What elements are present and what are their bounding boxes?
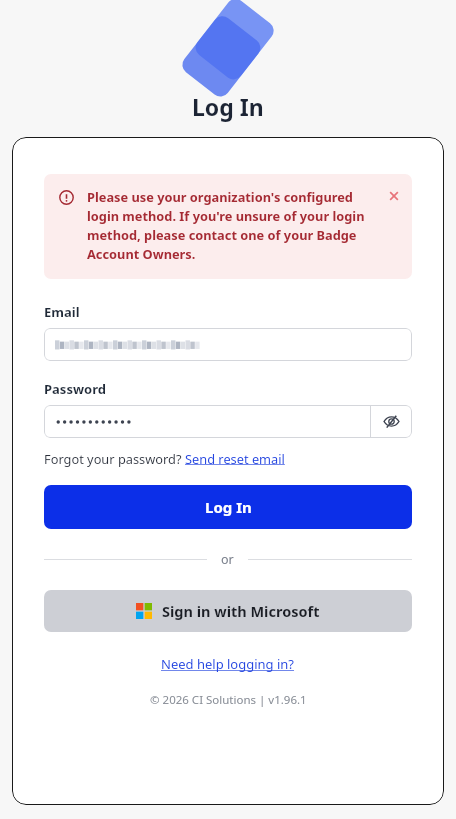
button[interactable]: Send reset email bbox=[185, 450, 285, 467]
staticText: Sign in with Microsoft bbox=[162, 601, 320, 621]
staticText: © 2026 CI Solutions | v1.96.1 bbox=[150, 692, 307, 708]
button[interactable]: Need help logging in? bbox=[161, 655, 295, 673]
button[interactable] bbox=[44, 328, 412, 361]
button[interactable]: Show password bbox=[370, 405, 412, 438]
staticText: Need help logging in? bbox=[161, 655, 295, 673]
button[interactable]: Log In bbox=[44, 485, 412, 529]
staticText: Log In bbox=[205, 497, 252, 517]
staticText: Password bbox=[44, 380, 106, 398]
staticText: Email bbox=[44, 303, 80, 321]
staticText: or bbox=[221, 551, 234, 568]
staticText: Please use your organization's configure… bbox=[87, 188, 380, 263]
staticText: Forgot your password? bbox=[44, 450, 185, 467]
button[interactable]: Sign in with Microsoft bbox=[44, 590, 412, 632]
button[interactable]: Dismiss alert bbox=[386, 188, 402, 204]
button[interactable] bbox=[44, 417, 370, 427]
staticText: Send reset email bbox=[185, 450, 285, 467]
staticText: Log In bbox=[192, 91, 264, 122]
